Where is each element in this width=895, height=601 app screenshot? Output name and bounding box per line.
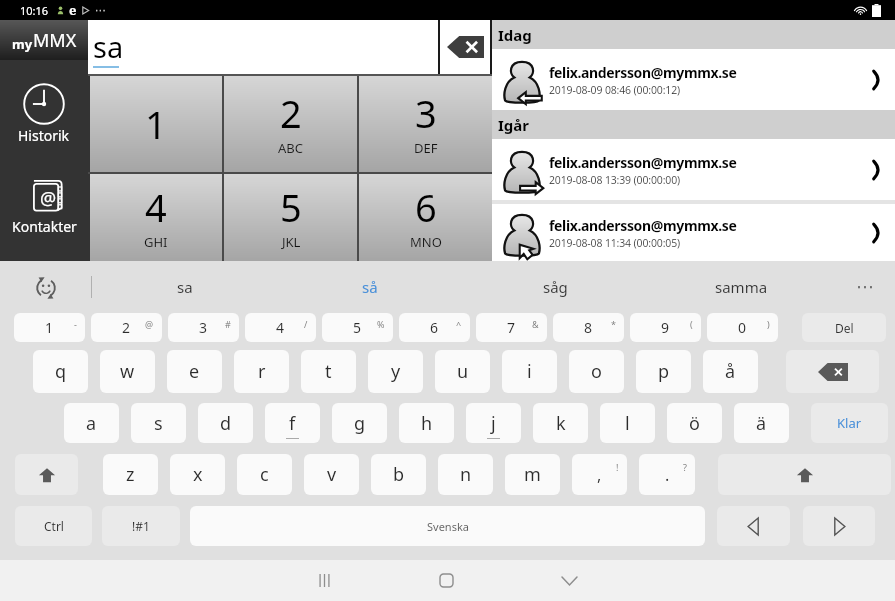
button[interactable]: 7 (476, 313, 547, 342)
button[interactable]: 1 (90, 76, 222, 172)
button[interactable]: 4 (90, 174, 222, 261)
button[interactable]: 2 (91, 313, 162, 342)
staticText: MMX (33, 28, 77, 53)
button[interactable]: Home (406, 560, 486, 601)
button[interactable]: ä (734, 403, 789, 443)
button[interactable] (803, 506, 875, 546)
button[interactable]: r (234, 350, 289, 393)
button[interactable]: s (131, 403, 186, 443)
button[interactable]: Emoji (0, 261, 91, 312)
button[interactable]: 8 (553, 313, 624, 342)
staticText: 10:16 (20, 3, 49, 18)
staticText: samma (715, 277, 768, 297)
button[interactable]: More options (834, 261, 895, 312)
button[interactable]: 9 (630, 313, 701, 342)
button[interactable]: . (639, 454, 695, 495)
button[interactable]: Klar (811, 403, 888, 443)
button[interactable]: t (301, 350, 356, 393)
staticText: 2019-08-08 11:34 (00:00:05) (549, 236, 681, 250)
staticText: j (491, 411, 496, 436)
button[interactable]: Recents (284, 560, 364, 601)
staticText: Del (835, 320, 854, 336)
button[interactable]: n (438, 454, 493, 495)
button[interactable]: Svenska (190, 506, 705, 546)
button[interactable]: x (170, 454, 225, 495)
staticText: sa (177, 277, 193, 297)
button[interactable]: f (265, 403, 320, 443)
button[interactable]: felix.andersson@mymmx.se (492, 204, 895, 261)
button[interactable]: 6 (359, 174, 492, 261)
button[interactable]: Ctrl (15, 506, 92, 546)
button[interactable]: 5 (224, 174, 357, 261)
staticText: q (55, 359, 67, 384)
button[interactable]: såg (462, 261, 648, 312)
button[interactable]: e (167, 350, 222, 393)
button[interactable]: 1 (14, 313, 85, 342)
button[interactable]: q (33, 350, 88, 393)
staticText: s (154, 411, 163, 436)
button[interactable] (15, 454, 78, 495)
button[interactable]: felix.andersson@mymmx.se (492, 139, 895, 200)
button[interactable]: m (505, 454, 560, 495)
staticText: d (220, 411, 232, 436)
button[interactable]: c (237, 454, 292, 495)
button[interactable]: b (371, 454, 426, 495)
staticText: u (457, 359, 469, 384)
button[interactable]: k (533, 403, 588, 443)
button[interactable]: p (636, 350, 691, 393)
button[interactable]: 3 (359, 76, 492, 172)
button[interactable]: Historik (0, 83, 88, 145)
button[interactable]: , (572, 454, 627, 495)
staticText: 6 (430, 318, 439, 337)
button[interactable]: Backspace (440, 20, 490, 74)
staticText: 8 (584, 318, 593, 337)
button[interactable]: sa (92, 261, 277, 312)
button[interactable]: 4 (245, 313, 316, 342)
button[interactable]: d (198, 403, 253, 443)
button[interactable]: y (368, 350, 423, 393)
staticText: 1 (145, 98, 167, 150)
staticText: DEF (414, 139, 438, 157)
staticText: 4 (276, 318, 285, 337)
button[interactable]: 3 (168, 313, 239, 342)
button[interactable]: w (100, 350, 155, 393)
button[interactable]: Del (802, 313, 886, 342)
button[interactable] (786, 350, 879, 393)
staticText: r (258, 359, 266, 384)
button[interactable] (718, 454, 891, 495)
button[interactable]: @ (0, 175, 88, 236)
button[interactable]: !#1 (102, 506, 180, 546)
button[interactable]: 0 (707, 313, 778, 342)
button[interactable] (717, 506, 790, 546)
button[interactable]: l (600, 403, 655, 443)
button[interactable]: o (569, 350, 624, 393)
button[interactable]: samma (648, 261, 834, 312)
staticText: v (327, 462, 337, 487)
button[interactable]: 5 (322, 313, 393, 342)
button[interactable]: v (304, 454, 359, 495)
button[interactable]: u (435, 350, 490, 393)
button[interactable]: h (399, 403, 454, 443)
button[interactable]: sa (93, 20, 438, 74)
staticText: 4 (145, 181, 167, 233)
staticText: c (260, 462, 269, 487)
button[interactable]: j (466, 403, 521, 443)
staticText: * (611, 318, 616, 330)
staticText: felix.andersson@mymmx.se (549, 153, 737, 172)
button[interactable]: g (332, 403, 387, 443)
button[interactable]: Hide keyboard (529, 560, 609, 601)
button[interactable]: a (64, 403, 119, 443)
button[interactable]: i (502, 350, 557, 393)
button[interactable]: å (703, 350, 758, 393)
staticText: / (304, 318, 308, 330)
staticText: ⋯ (856, 276, 874, 297)
button[interactable]: z (103, 454, 158, 495)
button[interactable]: felix.andersson@mymmx.se (492, 49, 895, 110)
staticText: @ (145, 318, 154, 330)
staticText: # (225, 318, 231, 330)
button[interactable]: 2 (224, 76, 357, 172)
button[interactable]: 6 (399, 313, 470, 342)
button[interactable]: ö (667, 403, 722, 443)
staticText: 2019-08-08 13:39 (00:00:00) (549, 173, 681, 187)
button[interactable]: så (277, 261, 462, 312)
